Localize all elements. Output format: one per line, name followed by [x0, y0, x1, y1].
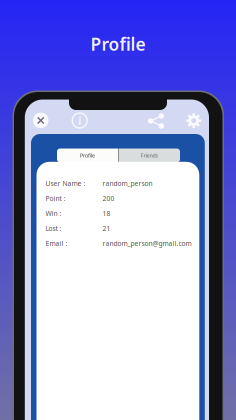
staticText: Lost :: [45, 224, 61, 233]
staticText: 21: [102, 224, 110, 233]
staticText: Profile: [90, 32, 145, 55]
staticText: random_person@gmail.com: [102, 239, 191, 248]
staticText: Email :: [45, 239, 67, 248]
button[interactable]: Information: [72, 113, 87, 128]
button[interactable]: Profile: [57, 148, 118, 162]
staticText: Profile: [80, 152, 95, 159]
staticText: User Name :: [45, 179, 85, 188]
staticText: 18: [102, 209, 110, 218]
staticText: i: [78, 113, 81, 128]
button[interactable]: Close: [33, 113, 48, 128]
button[interactable]: Friends: [119, 148, 180, 162]
staticText: Point :: [45, 194, 65, 203]
staticText: 200: [102, 194, 114, 203]
staticText: Friends: [140, 152, 158, 159]
staticText: Win :: [45, 209, 61, 218]
button[interactable]: Settings: [185, 113, 203, 128]
staticText: random_person: [102, 179, 152, 188]
button[interactable]: Share: [147, 114, 165, 128]
